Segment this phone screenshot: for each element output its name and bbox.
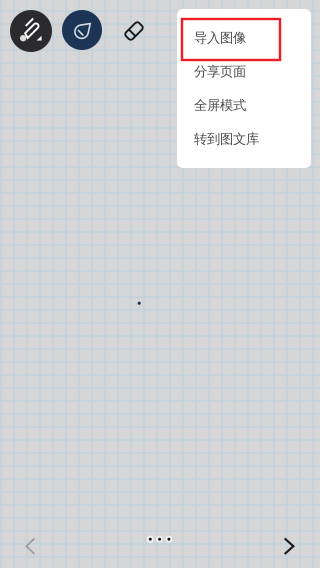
button[interactable]: 导入图像 xyxy=(177,21,311,55)
button[interactable]: More options xyxy=(136,523,184,555)
button[interactable]: Eraser xyxy=(119,16,149,46)
staticText: 全屏模式 xyxy=(194,97,246,113)
button[interactable]: Highlighter xyxy=(10,10,52,52)
button[interactable]: Next page xyxy=(269,526,309,566)
staticText: 分享页面 xyxy=(194,63,246,80)
button[interactable]: Previous page xyxy=(10,526,50,566)
staticText: 导入图像 xyxy=(194,30,246,46)
button[interactable]: 转到图文库 xyxy=(177,122,311,156)
button[interactable]: 全屏模式 xyxy=(177,88,311,122)
button[interactable]: Ink color xyxy=(62,10,102,50)
staticText: 转到图文库 xyxy=(194,131,259,147)
button[interactable]: 分享页面 xyxy=(177,55,311,88)
